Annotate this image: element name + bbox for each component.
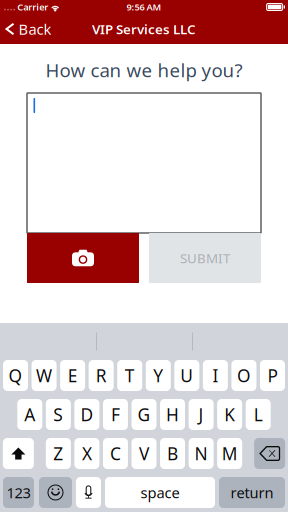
staticText: B: [167, 442, 178, 465]
staticText: 123: [6, 483, 30, 502]
staticText: space: [140, 483, 179, 502]
staticText: SUBMIT: [180, 249, 230, 267]
staticText: E: [68, 364, 78, 387]
button[interactable]: Shift: [3, 438, 34, 469]
staticText: return: [230, 483, 273, 502]
staticText: Back: [18, 19, 51, 39]
staticText: How can we help you?: [45, 58, 242, 82]
button[interactable]: Emoji: [39, 477, 72, 508]
staticText: Z: [53, 442, 63, 465]
staticText: X: [82, 442, 92, 465]
button[interactable]: R: [89, 360, 114, 391]
button[interactable]: X: [74, 438, 99, 469]
staticText: 9:56 AM: [126, 1, 161, 13]
staticText: T: [125, 364, 135, 387]
button[interactable]: P: [260, 360, 285, 391]
button[interactable]: V: [131, 438, 156, 469]
staticText: U: [180, 364, 193, 387]
staticText: Y: [153, 364, 163, 387]
button[interactable]: S: [46, 399, 71, 430]
button[interactable]: B: [160, 438, 185, 469]
button[interactable]: Y: [146, 360, 171, 391]
button[interactable]: Z: [46, 438, 71, 469]
staticText: J: [199, 403, 204, 426]
button[interactable]: L: [246, 399, 271, 430]
button[interactable]: 123: [3, 477, 34, 508]
button[interactable]: J: [189, 399, 214, 430]
button[interactable]: space: [105, 477, 215, 508]
staticText: W: [36, 364, 52, 387]
button[interactable]: F: [103, 399, 128, 430]
staticText: V: [139, 442, 149, 465]
staticText: H: [166, 403, 179, 426]
button[interactable]: Dictation: [76, 477, 101, 508]
button[interactable]: D: [74, 399, 99, 430]
button[interactable]: G: [131, 399, 156, 430]
staticText: K: [224, 403, 235, 426]
staticText: Carrier: [15, 1, 50, 13]
button[interactable]: O: [231, 360, 256, 391]
button[interactable]: Delete: [254, 438, 285, 469]
button[interactable]: Back: [0, 14, 59, 44]
button[interactable]: U: [174, 360, 199, 391]
button[interactable]: Attach photo: [27, 233, 139, 283]
button[interactable]: W: [32, 360, 57, 391]
button[interactable]: C: [103, 438, 128, 469]
button[interactable]: H: [160, 399, 185, 430]
button[interactable]: E: [60, 360, 85, 391]
staticText: VIP Services LLC: [92, 20, 196, 38]
staticText: D: [80, 403, 93, 426]
staticText: F: [111, 403, 120, 426]
staticText: G: [137, 403, 150, 426]
staticText: M: [222, 442, 238, 465]
button[interactable]: Q: [3, 360, 28, 391]
button[interactable]: return: [219, 477, 285, 508]
staticText: N: [195, 442, 208, 465]
staticText: I: [212, 364, 218, 387]
staticText: S: [53, 403, 63, 426]
button[interactable]: I: [203, 360, 228, 391]
staticText: O: [237, 364, 251, 387]
staticText: C: [110, 442, 121, 465]
button[interactable]: T: [117, 360, 142, 391]
button[interactable]: M: [217, 438, 242, 469]
button[interactable]: SUBMIT: [149, 233, 261, 283]
staticText: P: [267, 364, 277, 387]
staticText: R: [96, 364, 107, 387]
button[interactable]: K: [217, 399, 242, 430]
button[interactable]: N: [189, 438, 214, 469]
staticText: L: [254, 403, 263, 426]
staticText: Q: [8, 364, 22, 387]
staticText: A: [24, 403, 35, 426]
button[interactable]: A: [17, 399, 42, 430]
